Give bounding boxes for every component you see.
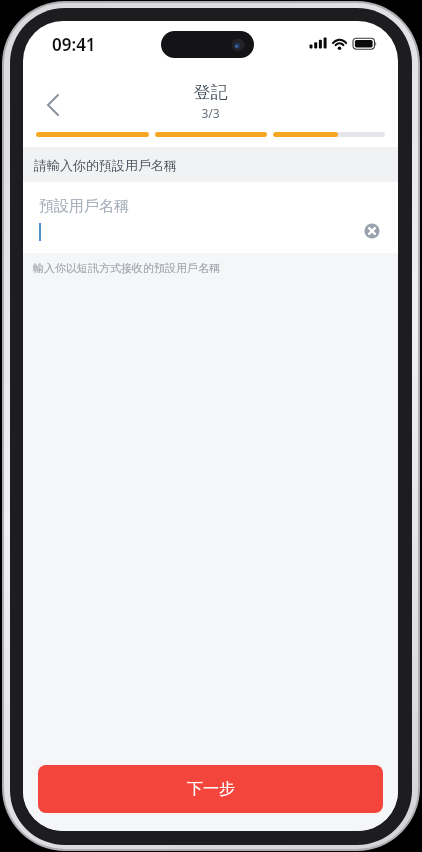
- button[interactable]: [364, 223, 380, 239]
- staticText: 09:41: [52, 33, 96, 56]
- button[interactable]: 下一步: [38, 765, 383, 813]
- staticText: 下一步: [187, 779, 235, 799]
- staticText: 輸入你以短訊方式接收的預設用戶名稱: [33, 261, 220, 275]
- staticText: 請輸入你的預設用戶名稱: [34, 157, 177, 173]
- button[interactable]: 預設用戶名稱: [23, 182, 398, 253]
- staticText: 預設用戶名稱: [39, 197, 129, 216]
- staticText: 3/3: [23, 105, 398, 121]
- staticText: 登記: [23, 82, 398, 103]
- button[interactable]: [36, 85, 70, 125]
